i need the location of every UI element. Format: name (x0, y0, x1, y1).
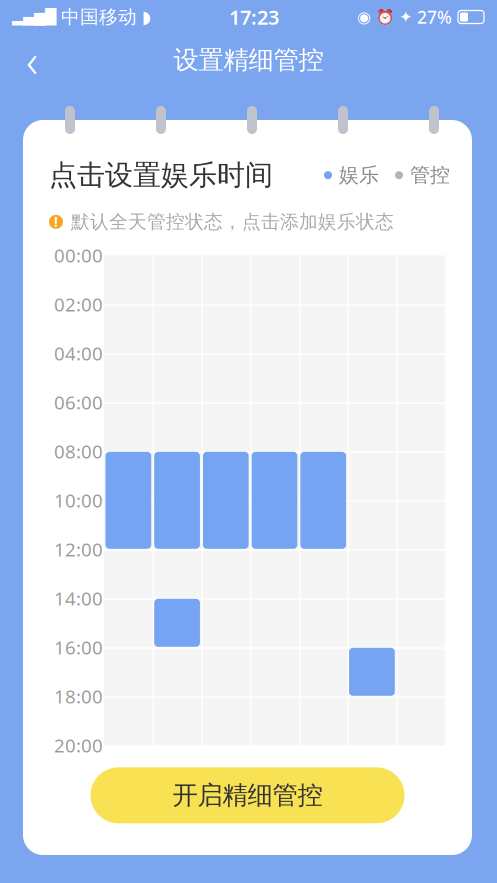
button[interactable]: 返回 (10, 38, 54, 82)
staticText: ◉ (357, 8, 371, 26)
staticText: 00:00 (54, 243, 103, 268)
staticText: 16:00 (54, 635, 103, 660)
button[interactable]: 娱乐时间段 (203, 452, 249, 549)
button[interactable]: 娱乐时间段 (349, 648, 395, 696)
staticText: 20:00 (54, 733, 103, 758)
staticText: 10:00 (54, 488, 103, 513)
staticText: 14:00 (54, 586, 103, 611)
staticText: ‹ (26, 30, 38, 90)
staticText: 18:00 (54, 684, 103, 709)
staticText: 12:00 (54, 537, 103, 562)
button[interactable]: 开启精细管控 (90, 767, 404, 823)
staticText: 06:00 (54, 390, 103, 415)
staticText: 02:00 (54, 292, 103, 317)
staticText: ⏰ (376, 9, 394, 25)
button[interactable]: 娱乐时间段 (300, 452, 346, 549)
staticText: 04:00 (54, 341, 103, 366)
staticText: 设置精细管控 (173, 44, 323, 75)
staticText: 开启精细管控 (172, 780, 322, 811)
button[interactable]: 娱乐时间段 (105, 452, 151, 549)
staticText: ◗ (142, 7, 151, 27)
button[interactable]: 娱乐时间段 (154, 452, 200, 549)
staticText: 点击设置娱乐时间 (49, 158, 273, 192)
staticText: ▂▄▆█ (12, 9, 56, 25)
staticText: 27% (417, 5, 452, 28)
staticText: ✦ (399, 8, 412, 26)
button[interactable]: 娱乐时间段 (154, 599, 200, 647)
staticText: 中国移动 (61, 5, 137, 28)
staticText: 默认全天管控状态，点击添加娱乐状态 (71, 210, 394, 233)
button[interactable]: 娱乐时间段 (252, 452, 297, 549)
staticText: 08:00 (54, 439, 103, 464)
staticText: 娱乐 (339, 163, 379, 187)
staticText: ! (54, 213, 58, 231)
staticText: 17:23 (229, 4, 279, 30)
staticText: 管控 (410, 163, 450, 187)
